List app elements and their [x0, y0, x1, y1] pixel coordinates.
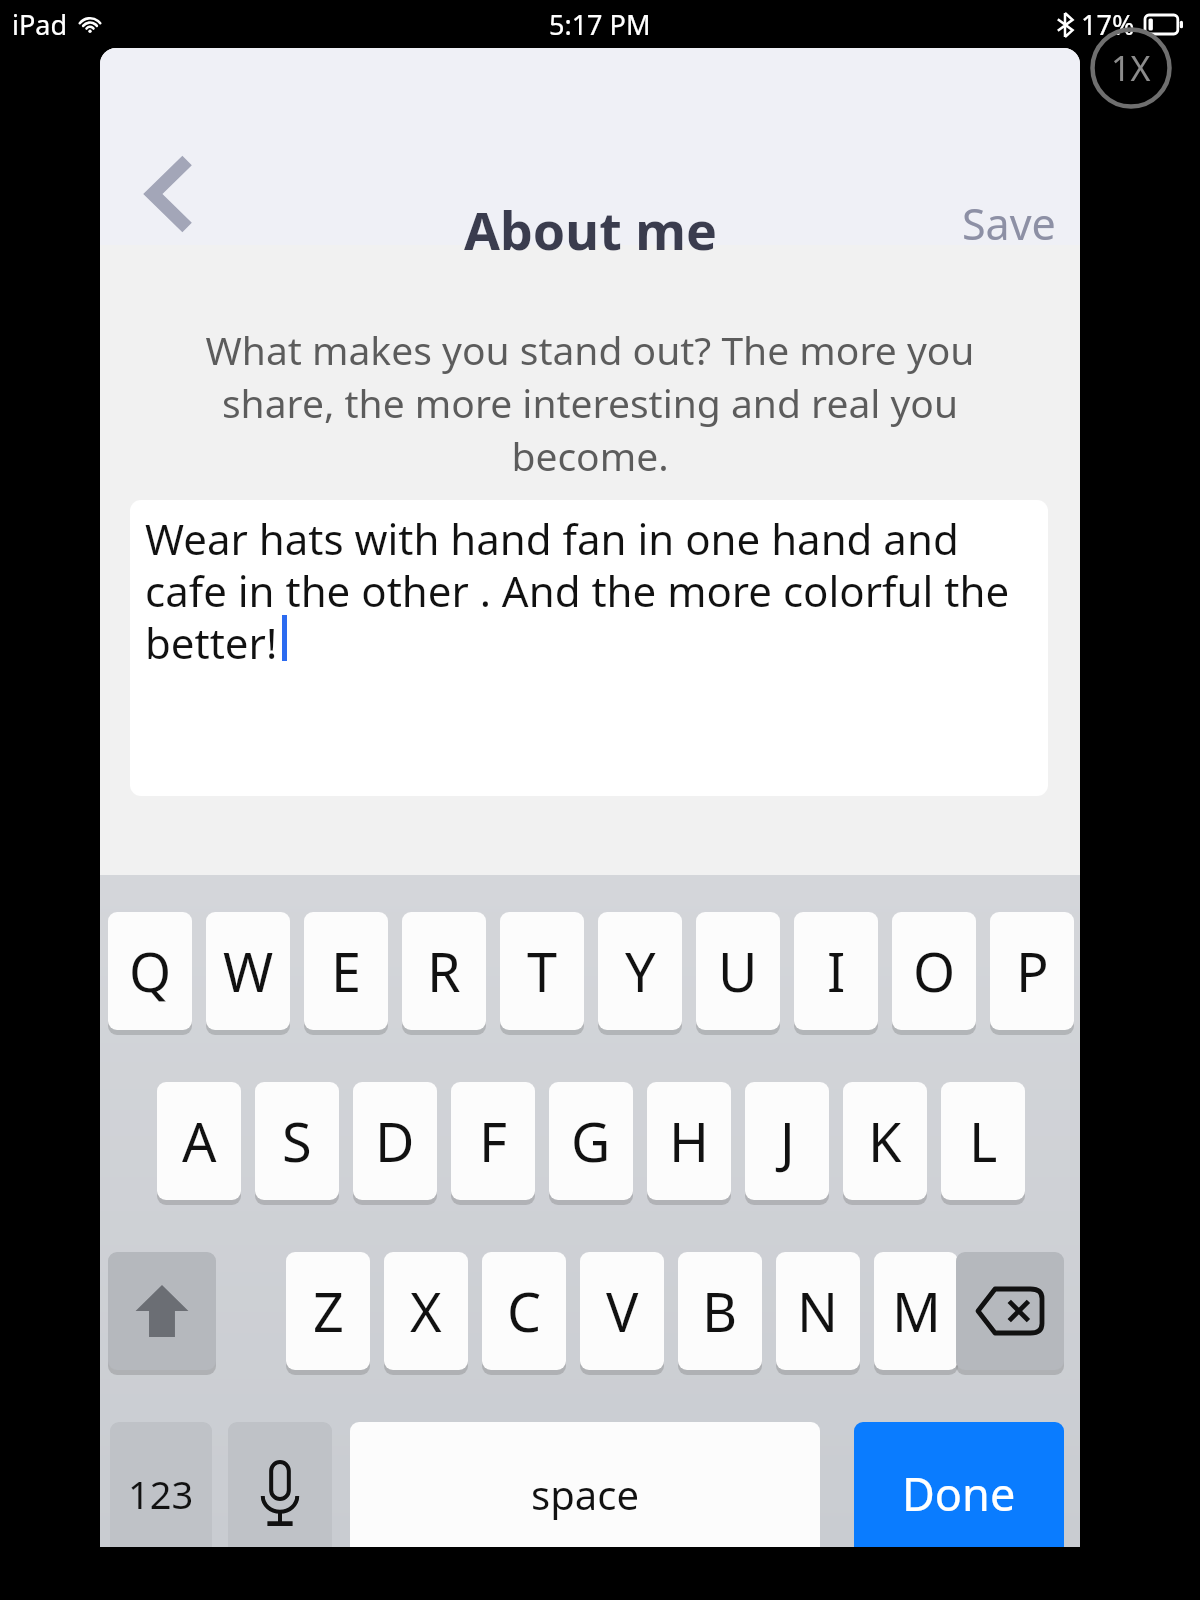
- button[interactable]: Q: [108, 912, 192, 1030]
- button[interactable]: X: [384, 1252, 468, 1370]
- button[interactable]: B: [678, 1252, 762, 1370]
- staticText: U: [718, 934, 758, 1008]
- staticText: F: [479, 1104, 508, 1178]
- button[interactable]: E: [304, 912, 388, 1030]
- staticText: S: [282, 1104, 312, 1178]
- button[interactable]: H: [647, 1082, 731, 1200]
- staticText: B: [702, 1274, 738, 1348]
- staticText: A: [182, 1104, 217, 1178]
- button[interactable]: I: [794, 912, 878, 1030]
- staticText: R: [427, 934, 461, 1008]
- staticText: K: [868, 1104, 902, 1178]
- staticText: G: [571, 1104, 611, 1178]
- button[interactable]: P: [990, 912, 1074, 1030]
- button[interactable]: space: [350, 1422, 820, 1547]
- staticText: 17%: [1081, 6, 1135, 43]
- staticText: Y: [625, 934, 656, 1008]
- staticText: I: [827, 934, 846, 1008]
- button[interactable]: T: [500, 912, 584, 1030]
- button[interactable]: Shift: [108, 1252, 216, 1370]
- button[interactable]: Save: [938, 184, 1080, 263]
- button[interactable]: D: [353, 1082, 437, 1200]
- staticText: H: [669, 1104, 710, 1178]
- button[interactable]: G: [549, 1082, 633, 1200]
- button[interactable]: Done: [854, 1422, 1064, 1547]
- staticText: Z: [313, 1274, 344, 1348]
- staticText: N: [797, 1274, 839, 1348]
- staticText: C: [507, 1274, 542, 1348]
- button[interactable]: Back: [130, 156, 206, 232]
- button[interactable]: Y: [598, 912, 682, 1030]
- staticText: About me: [464, 194, 717, 265]
- button[interactable]: W: [206, 912, 290, 1030]
- staticText: J: [780, 1104, 795, 1178]
- button[interactable]: V: [580, 1252, 664, 1370]
- button[interactable]: 123: [110, 1422, 212, 1547]
- staticText: L: [969, 1104, 998, 1178]
- staticText: 123: [128, 1468, 194, 1520]
- button[interactable]: R: [402, 912, 486, 1030]
- button[interactable]: O: [892, 912, 976, 1030]
- staticText: E: [331, 934, 362, 1008]
- staticText: Q: [129, 934, 172, 1008]
- button[interactable]: A: [157, 1082, 241, 1200]
- button[interactable]: Dictate: [228, 1422, 332, 1547]
- button[interactable]: L: [941, 1082, 1025, 1200]
- button[interactable]: F: [451, 1082, 535, 1200]
- staticText: M: [892, 1274, 941, 1348]
- button[interactable]: Wear hats with hand fan in one hand and …: [130, 500, 1048, 796]
- staticText: T: [527, 934, 558, 1008]
- button[interactable]: 1X zoom: [1090, 27, 1172, 109]
- staticText: 1X: [1111, 45, 1151, 91]
- staticText: Wear hats with hand fan in one hand and …: [145, 510, 1036, 671]
- staticText: X: [410, 1274, 442, 1348]
- staticText: D: [375, 1104, 415, 1178]
- button[interactable]: J: [745, 1082, 829, 1200]
- button[interactable]: Backspace: [956, 1252, 1064, 1370]
- staticText: O: [913, 934, 956, 1008]
- staticText: Done: [902, 1463, 1016, 1524]
- button[interactable]: U: [696, 912, 780, 1030]
- staticText: iPad: [12, 6, 68, 43]
- staticText: What makes you stand out? The more you s…: [178, 323, 1002, 482]
- staticText: P: [1016, 934, 1049, 1008]
- button[interactable]: C: [482, 1252, 566, 1370]
- button[interactable]: M: [874, 1252, 958, 1370]
- button[interactable]: Z: [286, 1252, 370, 1370]
- staticText: W: [223, 934, 274, 1008]
- button[interactable]: S: [255, 1082, 339, 1200]
- staticText: space: [531, 1467, 639, 1521]
- staticText: V: [606, 1274, 639, 1348]
- staticText: 5:17 PM: [549, 6, 651, 43]
- button[interactable]: N: [776, 1252, 860, 1370]
- button[interactable]: K: [843, 1082, 927, 1200]
- staticText: Save: [962, 194, 1056, 253]
